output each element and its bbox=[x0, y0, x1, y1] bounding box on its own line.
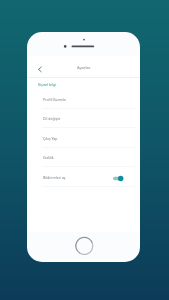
staticText: Gizlilik bbox=[43, 155, 54, 160]
staticText: Bildirimleri aç bbox=[43, 175, 66, 180]
button[interactable]: Gizlilik bbox=[27, 147, 140, 167]
staticText: Profil Düzenle bbox=[43, 97, 66, 102]
button[interactable]: Dil değiştir bbox=[27, 108, 140, 128]
button[interactable]: Çıkış Yap bbox=[27, 128, 140, 148]
staticText: Dil değiştir bbox=[43, 116, 61, 121]
button[interactable]: Profil Düzenle bbox=[27, 89, 140, 109]
button[interactable]: Bildirimleri aç bbox=[27, 167, 140, 187]
button[interactable]: Back bbox=[33, 62, 46, 77]
staticText: Çıkış Yap bbox=[43, 136, 58, 141]
staticText: Ayarlar bbox=[77, 65, 91, 70]
staticText: Kişisel bilgi bbox=[38, 82, 57, 87]
